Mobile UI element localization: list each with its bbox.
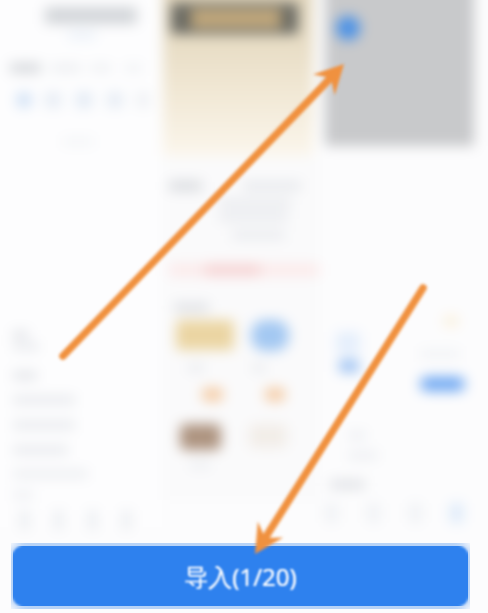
staticText: 导入(1/20) [184,560,297,593]
button[interactable]: 导入(1/20) [13,546,468,606]
